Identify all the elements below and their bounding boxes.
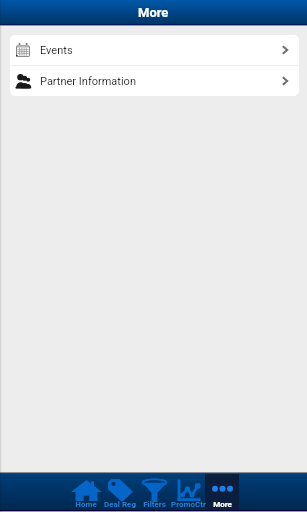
button[interactable]: Filters — [137, 474, 171, 510]
staticText: Partner Information — [40, 75, 136, 88]
button[interactable]: More — [205, 474, 239, 510]
other: More — [210, 479, 235, 502]
button[interactable]: Events — [10, 35, 299, 65]
button[interactable]: Home — [69, 474, 103, 510]
staticText: More — [213, 500, 232, 509]
staticText: Deal Reg — [104, 500, 136, 509]
button[interactable]: Deal Reg — [103, 474, 137, 510]
staticText: Filters — [143, 500, 166, 509]
staticText: Events — [40, 44, 73, 57]
staticText: Home — [75, 500, 97, 509]
button[interactable]: Partner Information — [10, 66, 299, 96]
staticText: PromoCtr — [171, 500, 206, 509]
staticText: More — [138, 5, 169, 20]
button[interactable]: PromoCtr — [171, 474, 205, 510]
